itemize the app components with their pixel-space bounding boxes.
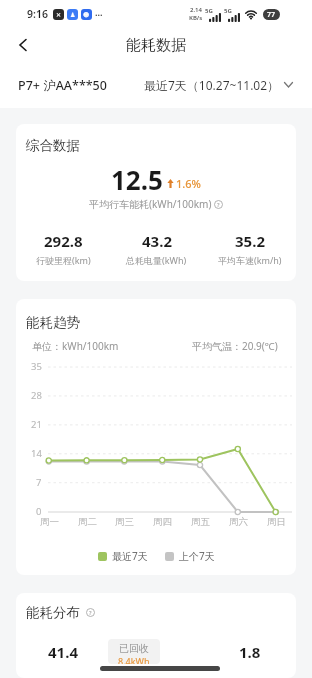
staticText: 周五	[191, 516, 210, 528]
staticText: 能耗分布	[26, 604, 80, 621]
staticText: ☻	[83, 11, 90, 18]
button[interactable]: 能耗分布	[16, 593, 296, 678]
staticText: 77	[267, 10, 276, 20]
staticText: 8.4kWh	[118, 655, 150, 664]
staticText: 周三	[115, 516, 134, 528]
staticText: 能耗数据	[126, 36, 186, 55]
staticText: ♟	[70, 11, 76, 18]
staticText: 1.8	[239, 642, 261, 662]
staticText: 43.2	[142, 231, 172, 251]
staticText: 综合数据	[26, 137, 80, 154]
staticText: ✕	[56, 11, 62, 18]
staticText: 周日	[267, 516, 286, 528]
button[interactable]: 能耗趋势	[16, 299, 296, 575]
staticText: ?	[217, 201, 220, 209]
staticText: P7+ 沪AA***50	[18, 77, 107, 94]
staticText: 平均气温：20.9(℃)	[192, 339, 278, 353]
staticText: 最近7天	[112, 549, 148, 563]
staticText: ···	[95, 8, 103, 20]
button[interactable]	[18, 39, 28, 51]
staticText: 5G	[224, 7, 232, 15]
staticText: 21	[31, 418, 42, 431]
staticText: 14	[31, 447, 42, 460]
staticText: 周一	[40, 516, 59, 528]
staticText: 上个7天	[179, 549, 215, 563]
staticText: 9:16	[27, 7, 48, 21]
staticText: 41.4	[48, 642, 78, 662]
staticText: 12.5	[111, 162, 163, 197]
staticText: 周四	[153, 516, 172, 528]
staticText: 7	[36, 476, 42, 489]
staticText: 292.8	[44, 231, 83, 251]
button[interactable]: 最近7天（10.27~11.02）	[144, 77, 293, 93]
button[interactable]: 综合数据	[16, 124, 296, 281]
staticText: ?	[89, 609, 92, 617]
staticText: 28	[31, 389, 42, 402]
staticText: KB/s	[189, 14, 203, 22]
staticText: 行驶里程(km)	[36, 254, 91, 266]
staticText: 已回收	[119, 642, 149, 655]
staticText: 35.2	[235, 231, 265, 251]
staticText: 1.6%	[176, 176, 201, 191]
staticText: 平均车速(km/h)	[218, 254, 282, 266]
staticText: 周六	[229, 516, 248, 528]
staticText: 平均行车能耗(kWh/100km)	[89, 197, 212, 211]
staticText: 35	[31, 360, 42, 373]
staticText: 0	[36, 505, 42, 518]
staticText: 周二	[78, 516, 97, 528]
staticText: 5G	[205, 7, 213, 15]
staticText: 单位：kWh/100km	[32, 339, 119, 353]
staticText: 能耗趋势	[26, 314, 80, 331]
staticText: 最近7天（10.27~11.02）	[144, 77, 280, 93]
staticText: 总耗电量(kWh)	[126, 254, 187, 266]
staticText: 2.14	[190, 6, 202, 14]
